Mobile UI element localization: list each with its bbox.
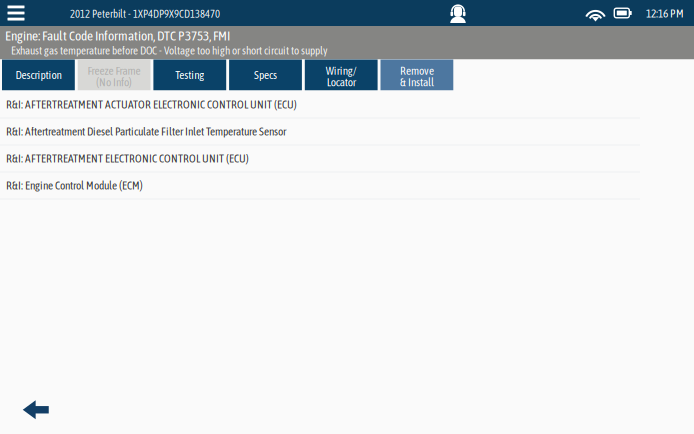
button[interactable]: Remove	[380, 59, 453, 90]
staticText: Locator	[327, 76, 356, 89]
staticText: & Install	[400, 76, 434, 89]
staticText: (No Info)	[96, 76, 132, 89]
button[interactable]: R&I: Aftertreatment Diesel Particulate F…	[0, 118, 694, 145]
staticText: Exhaust gas temperature before DOC - Vol…	[11, 44, 328, 57]
button[interactable]: Testing	[153, 59, 226, 90]
staticText: Remove	[400, 64, 434, 77]
button[interactable]: Freeze Frame	[78, 59, 150, 90]
staticText: R&I: AFTERTREATMENT ACTUATOR ELECTRONIC …	[6, 98, 297, 111]
staticText: Engine: Fault Code Information, DTC P375…	[5, 28, 230, 43]
button[interactable]: R&I: Engine Control Module (ECM)	[0, 172, 694, 199]
button[interactable]: R&I: AFTERTREATMENT ACTUATOR ELECTRONIC …	[0, 91, 694, 118]
button[interactable]: Menu	[4, 2, 28, 24]
staticText: Testing	[175, 68, 204, 81]
button[interactable]: Back	[11, 394, 61, 426]
staticText: R&I: AFTERTREATMENT ELECTRONIC CONTROL U…	[6, 152, 249, 165]
button[interactable]: Support	[448, 3, 468, 23]
staticText: R&I: Aftertreatment Diesel Particulate F…	[6, 125, 286, 138]
staticText: 2012 Peterbilt - 1XP4DP9X9CD138470	[70, 8, 220, 20]
button[interactable]: R&I: AFTERTREATMENT ELECTRONIC CONTROL U…	[0, 145, 694, 172]
staticText: Wiring/	[326, 64, 357, 77]
staticText: Specs	[254, 68, 277, 81]
button[interactable]: Wiring/	[305, 59, 378, 90]
staticText: Freeze Frame	[88, 64, 141, 77]
button[interactable]: Specs	[229, 59, 302, 90]
staticText: Description	[15, 68, 61, 81]
button[interactable]: Description	[2, 59, 75, 90]
staticText: 12:16 PM	[646, 7, 684, 20]
staticText: R&I: Engine Control Module (ECM)	[6, 179, 143, 192]
